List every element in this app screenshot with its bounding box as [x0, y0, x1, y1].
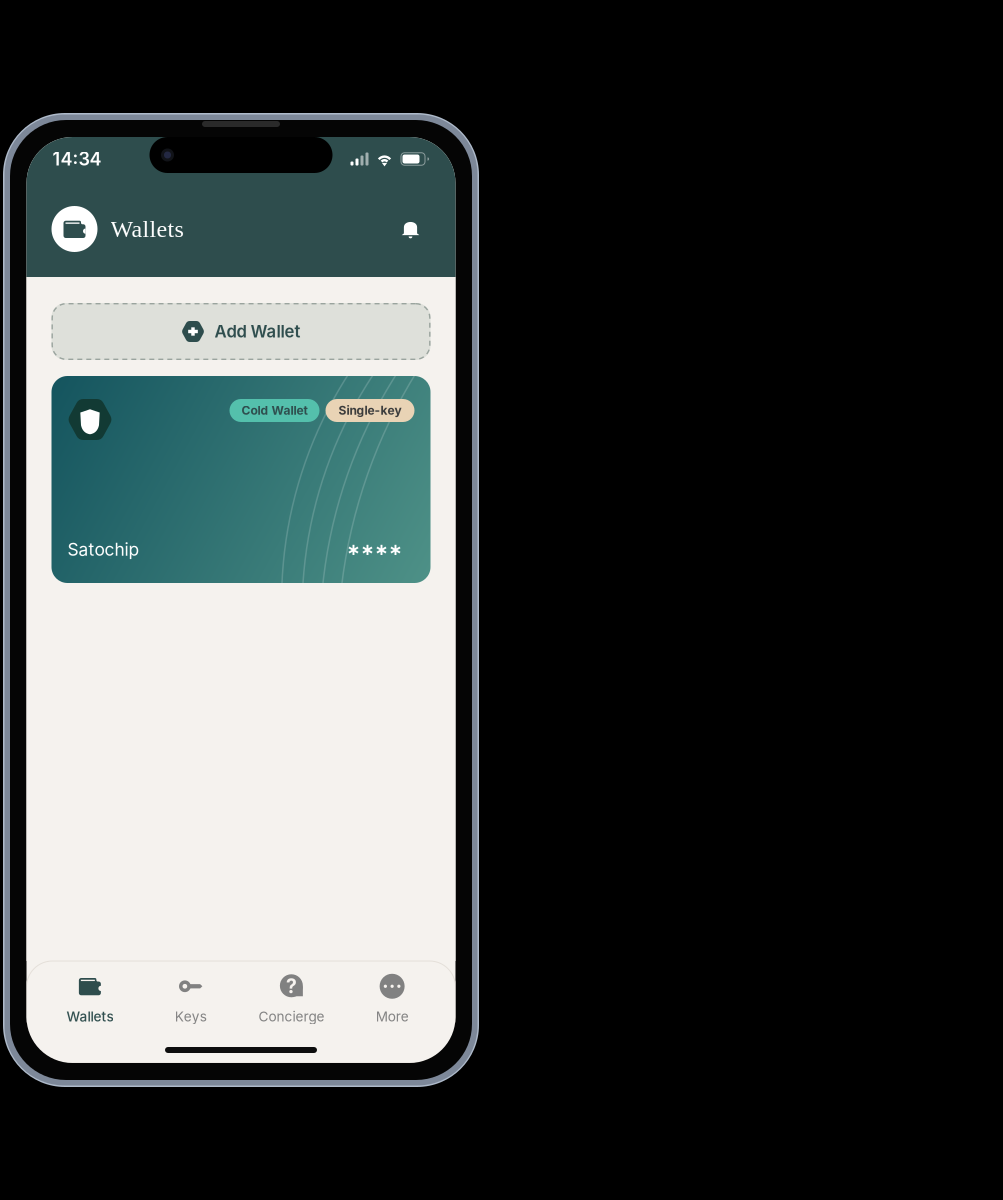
staticText: Cold Wallet — [241, 403, 307, 418]
button[interactable]: Wallets — [51, 206, 183, 252]
button[interactable]: Keys — [140, 972, 241, 1026]
button[interactable]: Notifications — [390, 209, 430, 249]
staticText: Concierge — [258, 1008, 324, 1025]
button[interactable]: Add Wallet — [51, 303, 430, 360]
staticText: ∗∗∗∗ — [346, 540, 402, 559]
button[interactable]: ? — [241, 972, 342, 1026]
staticText: Keys — [175, 1008, 207, 1025]
staticText: 14:34 — [52, 148, 101, 170]
button[interactable]: More — [342, 972, 443, 1026]
button[interactable]: Wallets — [39, 972, 140, 1026]
staticText: Add Wallet — [214, 321, 300, 342]
staticText: Wallets — [66, 1008, 113, 1025]
staticText: More — [376, 1008, 409, 1025]
button[interactable]: Cold Wallet — [51, 376, 430, 583]
staticText: Wallets — [110, 216, 183, 242]
staticText: ? — [286, 975, 297, 998]
staticText: Satochip — [67, 539, 139, 560]
staticText: Single-key — [338, 403, 401, 418]
